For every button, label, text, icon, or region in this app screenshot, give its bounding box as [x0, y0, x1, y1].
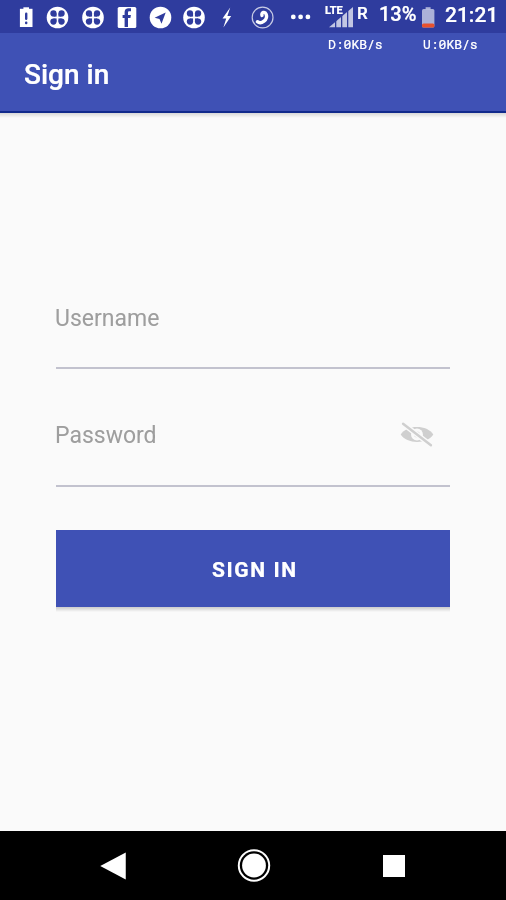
- staticText: LTE: [325, 4, 343, 17]
- staticText: Username: [55, 305, 160, 332]
- staticText: 21:21: [445, 3, 499, 28]
- button[interactable]: Password: [56, 417, 450, 487]
- button[interactable]: Toggle password visibility: [398, 415, 436, 453]
- staticText: SIGN IN: [212, 558, 298, 583]
- button[interactable]: Home: [228, 840, 280, 892]
- button[interactable]: Username: [56, 300, 450, 369]
- button[interactable]: SIGN IN: [56, 530, 450, 607]
- button[interactable]: Recents: [368, 840, 420, 892]
- staticText: R: [357, 3, 368, 23]
- button[interactable]: Back: [87, 840, 139, 892]
- staticText: Sign in: [24, 58, 110, 91]
- staticText: U:0KB/s: [423, 35, 478, 52]
- staticText: D:0KB/s: [328, 35, 383, 52]
- staticText: Password: [55, 422, 157, 449]
- staticText: 13%: [379, 2, 417, 25]
